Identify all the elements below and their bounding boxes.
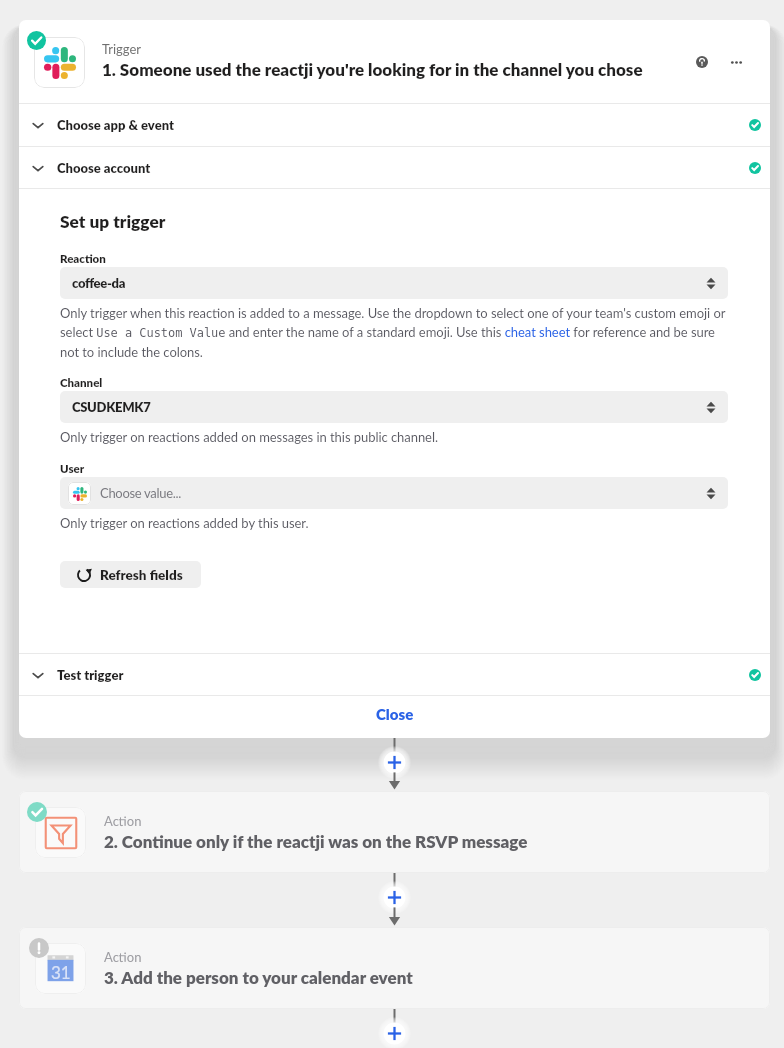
staticText: Channel [60, 376, 103, 390]
staticText: Test trigger [57, 667, 124, 683]
button[interactable]: coffee-da [60, 267, 728, 299]
staticText: 3. Add the person to your calendar event [104, 967, 413, 987]
staticText: Reaction [60, 252, 106, 266]
button[interactable]: CSUDKEMK7 [60, 391, 728, 423]
staticText: Choose app & event [57, 117, 174, 133]
button[interactable]: Close [19, 696, 770, 738]
staticText: User [60, 462, 85, 476]
staticText: Trigger [102, 41, 142, 57]
button[interactable]: Trigger [19, 20, 770, 103]
staticText: Only trigger on reactions added by this … [60, 515, 309, 531]
staticText: 1. Someone used the reactji you're looki… [102, 59, 643, 79]
staticText: Action [104, 949, 142, 965]
button[interactable]: Choose value... [60, 477, 728, 509]
staticText: Action [104, 813, 142, 829]
staticText: coffee-da [72, 275, 126, 291]
button[interactable]: 31 [19, 927, 770, 1009]
staticText: Only trigger on reactions added on messa… [60, 429, 438, 445]
staticText: Only trigger when this reaction is added… [60, 305, 728, 360]
button[interactable]: Test trigger [19, 654, 770, 695]
staticText: 31 [51, 962, 71, 982]
button[interactable]: Choose account [19, 147, 770, 188]
staticText: Close [376, 705, 414, 723]
staticText: Set up trigger [60, 211, 166, 232]
staticText: Choose account [57, 160, 151, 176]
staticText: 2. Continue only if the reactji was on t… [104, 831, 528, 851]
staticText: Refresh fields [100, 567, 183, 583]
button[interactable]: Refresh fields [60, 561, 201, 588]
staticText: Choose value... [100, 485, 182, 501]
button[interactable]: Help [686, 46, 718, 78]
button[interactable]: Choose app & event [19, 104, 770, 146]
button[interactable]: Action [19, 791, 770, 873]
staticText: CSUDKEMK7 [72, 399, 151, 415]
button[interactable]: More options [723, 49, 749, 75]
